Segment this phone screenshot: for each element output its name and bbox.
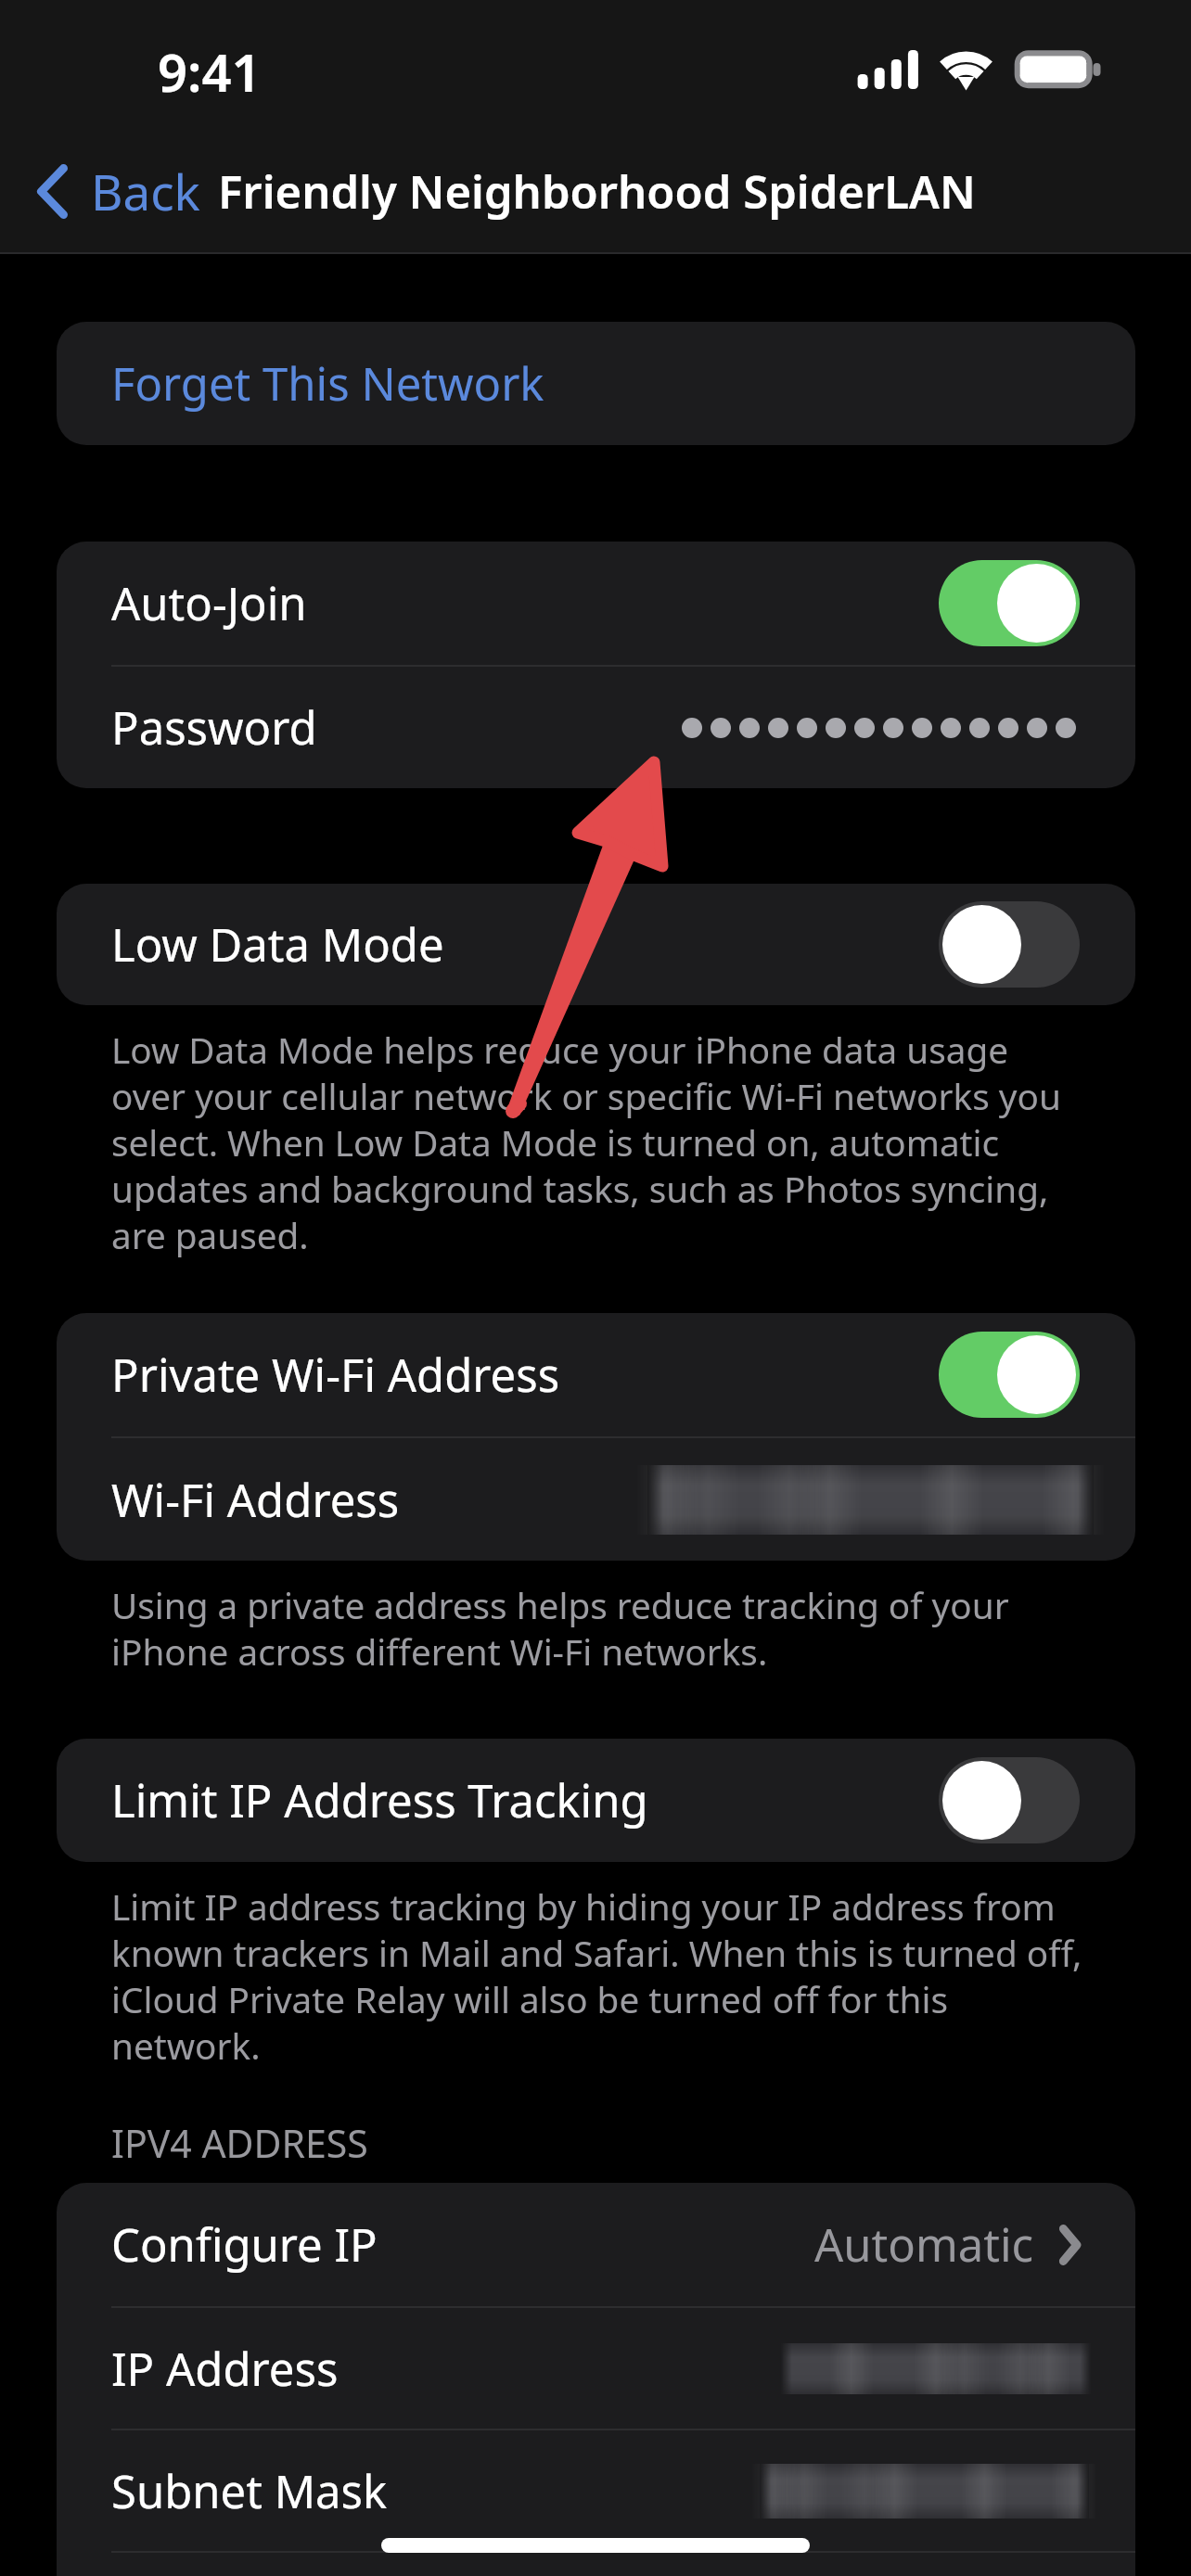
staticText: Password bbox=[111, 696, 317, 759]
button[interactable]: Switch, off bbox=[939, 901, 1080, 988]
button[interactable]: Limit IP Address Tracking bbox=[57, 1739, 1135, 1862]
staticText: Limit IP Address Tracking bbox=[111, 1769, 648, 1831]
staticText: IP Address bbox=[111, 2338, 339, 2400]
button[interactable]: Password bbox=[57, 667, 1135, 788]
staticText: Low Data Mode bbox=[111, 913, 444, 976]
button[interactable]: Configure IP bbox=[57, 2183, 1135, 2306]
staticText: Private Wi-Fi Address bbox=[111, 1344, 560, 1406]
staticText: Back bbox=[91, 158, 200, 224]
staticText: Using a private address helps reduce tra… bbox=[111, 1583, 1083, 1676]
button[interactable]: Forget This Network bbox=[57, 322, 1135, 445]
staticText: Forget This Network bbox=[111, 352, 544, 414]
staticText: 9:41 bbox=[158, 36, 262, 107]
button[interactable]: Auto-Join bbox=[57, 542, 1135, 665]
button[interactable]: Back bbox=[35, 158, 206, 224]
staticText: Configure IP bbox=[111, 2213, 378, 2276]
button[interactable]: Switch, on bbox=[939, 1332, 1080, 1418]
staticText: Wi-Fi Address bbox=[111, 1469, 400, 1531]
staticText: Subnet Mask bbox=[111, 2460, 388, 2522]
staticText: Low Data Mode helps reduce your iPhone d… bbox=[111, 1027, 1083, 1259]
staticText: Automatic bbox=[814, 2213, 1034, 2276]
button[interactable]: Low Data Mode bbox=[57, 884, 1135, 1005]
button[interactable]: Subnet Mask bbox=[57, 2430, 1135, 2551]
button[interactable]: Private Wi-Fi Address bbox=[57, 1313, 1135, 1436]
staticText: Friendly Neighborhood SpiderLAN bbox=[218, 160, 976, 223]
staticText: Limit IP address tracking by hiding your… bbox=[111, 1884, 1083, 2070]
button[interactable]: Switch, on bbox=[939, 560, 1080, 646]
button[interactable]: Switch, off bbox=[939, 1757, 1080, 1843]
button[interactable]: IP Address bbox=[57, 2308, 1135, 2429]
staticText: IPV4 ADDRESS bbox=[111, 2117, 368, 2169]
button[interactable]: Wi-Fi Address bbox=[57, 1438, 1135, 1561]
staticText: Auto-Join bbox=[111, 572, 307, 634]
